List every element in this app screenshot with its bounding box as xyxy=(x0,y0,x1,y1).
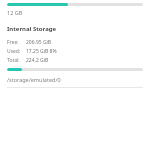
button[interactable]: Internal Storage xyxy=(0,25,150,33)
button[interactable]: Used: xyxy=(7,48,143,55)
staticText: Internal Storage xyxy=(7,25,57,33)
button[interactable]: /storage/emulated/0 xyxy=(0,76,150,83)
staticText: 206.95 GiB xyxy=(26,39,52,46)
staticText: 224.2 GiB xyxy=(26,57,49,64)
button[interactable]: Total: xyxy=(7,57,143,64)
staticText: 17.25 GiB 8% xyxy=(26,48,57,55)
staticText: Free: xyxy=(7,39,19,46)
staticText: Used: xyxy=(7,48,21,55)
staticText: Total: xyxy=(7,57,20,64)
staticText: /storage/emulated/0 xyxy=(7,76,61,83)
staticText: 12 GB xyxy=(7,9,23,16)
button[interactable]: Free: xyxy=(7,39,143,46)
